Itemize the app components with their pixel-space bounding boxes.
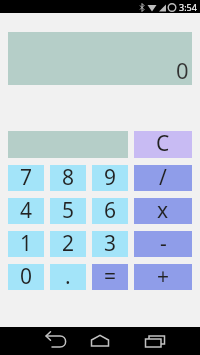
button[interactable]: 7	[8, 165, 44, 191]
button[interactable]: 4	[8, 198, 44, 224]
button[interactable]: +	[134, 264, 192, 290]
staticText: /	[159, 163, 167, 189]
staticText: 0	[176, 55, 189, 85]
staticText: 4	[20, 196, 33, 222]
button[interactable]: 0	[8, 264, 44, 290]
staticText: 2	[62, 229, 75, 255]
button[interactable]: .	[50, 264, 86, 290]
staticText: 1	[20, 229, 33, 255]
button[interactable]: 3	[92, 231, 128, 257]
staticText: 6	[104, 196, 117, 222]
button[interactable]: -	[134, 231, 192, 257]
staticText: 3	[104, 229, 117, 255]
button[interactable]: 8	[50, 165, 86, 191]
staticText: 5	[62, 196, 75, 222]
staticText: 9	[104, 163, 117, 189]
staticText: =	[104, 262, 117, 288]
button[interactable]: C	[134, 131, 192, 158]
button[interactable]: =	[92, 264, 128, 290]
staticText: -	[160, 229, 167, 255]
button[interactable]: 5	[50, 198, 86, 224]
staticText: 0	[20, 262, 33, 288]
staticText: 3:54	[179, 1, 197, 13]
button[interactable]: x	[134, 198, 192, 224]
staticText: 8	[62, 163, 75, 189]
staticText: .	[65, 262, 71, 288]
button[interactable]: 9	[92, 165, 128, 191]
staticText: +	[157, 262, 170, 288]
button[interactable]: 6	[92, 198, 128, 224]
staticText: 7	[20, 163, 33, 189]
button[interactable]: 1	[8, 231, 44, 257]
button[interactable]: 2	[50, 231, 86, 257]
staticText: x	[157, 196, 169, 222]
staticText: C	[156, 129, 170, 156]
button[interactable]: /	[134, 165, 192, 191]
